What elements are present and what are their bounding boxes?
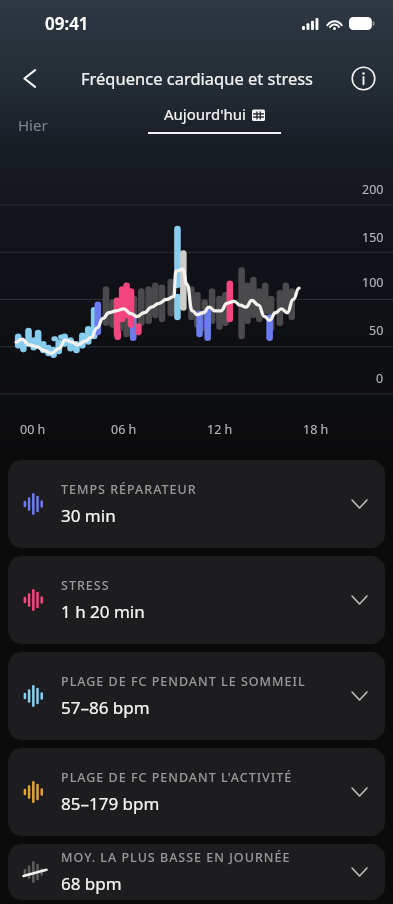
staticText: 12 h <box>207 421 233 438</box>
staticText: TEMPS RÉPARATEUR <box>61 481 197 498</box>
button[interactable]: PLAGE DE FC PENDANT LE SOMMEIL <box>8 652 385 740</box>
staticText: 09:41 <box>45 12 89 35</box>
button[interactable]: Informations <box>342 57 384 99</box>
staticText: STRESS <box>61 577 110 594</box>
button[interactable]: MOY. LA PLUS BASSE EN JOURNÉE <box>8 844 385 900</box>
staticText: 50 <box>369 322 384 339</box>
staticText: Hier <box>18 115 48 135</box>
button[interactable]: Retour <box>8 56 52 100</box>
staticText: 30 min <box>61 504 116 527</box>
button[interactable]: Aujourd'hui <box>148 104 281 134</box>
staticText: 68 bpm <box>61 872 122 895</box>
staticText: 57–86 bpm <box>61 696 150 719</box>
staticText: 0 <box>376 370 384 387</box>
staticText: 100 <box>362 274 384 291</box>
staticText: 85–179 bpm <box>61 792 160 815</box>
staticText: 150 <box>362 229 384 246</box>
staticText: 18 h <box>303 421 329 438</box>
button[interactable]: STRESS <box>8 556 385 644</box>
button[interactable]: PLAGE DE FC PENDANT L'ACTIVITÉ <box>8 748 385 836</box>
staticText: PLAGE DE FC PENDANT LE SOMMEIL <box>61 673 306 690</box>
staticText: Fréquence cardiaque et stress <box>81 67 313 89</box>
button[interactable]: TEMPS RÉPARATEUR <box>8 460 385 548</box>
staticText: 200 <box>362 181 384 198</box>
staticText: 1 h 20 min <box>61 600 145 623</box>
staticText: 06 h <box>111 421 137 438</box>
button[interactable]: Hier <box>18 115 48 135</box>
staticText: 00 h <box>20 421 46 438</box>
staticText: Aujourd'hui <box>164 104 246 124</box>
staticText: PLAGE DE FC PENDANT L'ACTIVITÉ <box>61 769 293 786</box>
staticText: MOY. LA PLUS BASSE EN JOURNÉE <box>61 849 291 866</box>
